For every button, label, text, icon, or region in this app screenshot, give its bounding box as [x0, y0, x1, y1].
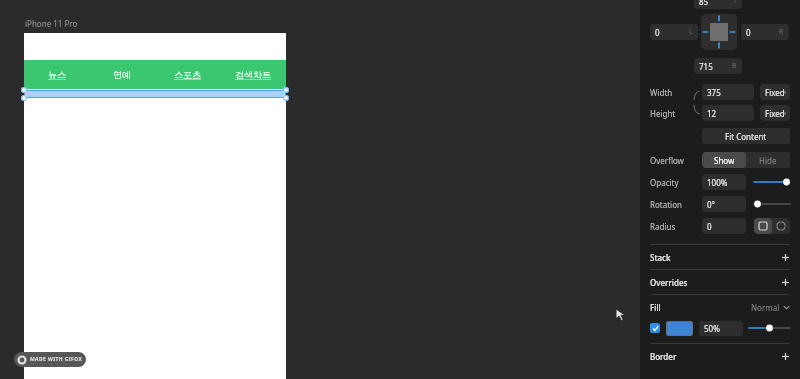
- button[interactable]: Border: [650, 344, 790, 368]
- staticText: 연예: [113, 69, 131, 80]
- staticText: L: [689, 27, 693, 37]
- staticText: Overflow: [650, 155, 702, 166]
- button[interactable]: 12: [702, 105, 754, 121]
- button[interactable]: Fill: [650, 295, 790, 319]
- button[interactable]: 85: [694, 0, 742, 9]
- staticText: MADE WITH GIFOX: [30, 356, 83, 363]
- staticText: Fit Content: [725, 131, 767, 142]
- staticText: Opacity: [650, 177, 702, 188]
- other: Add Overrides: [781, 278, 790, 287]
- button[interactable]: Fixed: [760, 105, 790, 121]
- button[interactable]: Padding: [701, 14, 737, 50]
- button[interactable]: 0°: [702, 196, 746, 212]
- staticText: Radius: [650, 221, 702, 232]
- button[interactable]: Show: [702, 152, 746, 168]
- staticText: R: [779, 27, 784, 37]
- staticText: Normal: [751, 302, 780, 313]
- button[interactable]: 연예: [89, 60, 154, 89]
- staticText: T: [733, 0, 737, 6]
- staticText: 0°: [707, 199, 715, 210]
- button[interactable]: 뉴스: [24, 60, 89, 89]
- staticText: 12: [707, 108, 717, 119]
- button[interactable]: Made with Gifox: [17, 352, 83, 367]
- staticText: Width: [650, 87, 692, 98]
- staticText: 0: [707, 221, 712, 232]
- staticText: 100%: [707, 177, 728, 188]
- button[interactable]: 715: [694, 58, 742, 74]
- staticText: 85: [699, 0, 709, 7]
- button[interactable]: 50%: [699, 321, 743, 336]
- staticText: 50%: [704, 323, 720, 334]
- button[interactable]: Fixed: [760, 84, 790, 100]
- staticText: 스포츠: [174, 69, 201, 80]
- other: Add Stack: [781, 253, 790, 262]
- staticText: 0: [746, 27, 751, 38]
- staticText: 0: [655, 27, 660, 38]
- staticText: Stack: [650, 252, 671, 263]
- other: Add Border: [781, 352, 790, 361]
- button[interactable]: Hide: [746, 152, 790, 168]
- staticText: Fill: [650, 302, 661, 313]
- button[interactable]: Overrides: [650, 270, 790, 294]
- staticText: 715: [699, 61, 713, 72]
- staticText: Hide: [759, 155, 777, 166]
- button[interactable]: Uniform radius: [754, 218, 772, 234]
- staticText: 뉴스: [48, 69, 66, 80]
- button[interactable]: 0: [741, 24, 789, 40]
- staticText: Fixed: [765, 87, 785, 98]
- button[interactable]: Stack: [650, 245, 790, 269]
- button[interactable]: Fit Content: [702, 128, 790, 144]
- staticText: Fixed: [765, 108, 785, 119]
- staticText: B: [732, 61, 737, 71]
- button[interactable]: 100%: [702, 174, 746, 190]
- button[interactable]: 스포츠: [154, 60, 220, 89]
- button[interactable]: 0: [702, 218, 746, 234]
- button[interactable]: 375: [702, 84, 754, 100]
- button[interactable]: Rotation slider: [754, 198, 790, 210]
- button[interactable]: Individual radius: [772, 218, 790, 234]
- button[interactable]: 0: [650, 24, 698, 40]
- button[interactable]: 검색차트: [220, 60, 286, 89]
- staticText: Border: [650, 351, 677, 362]
- button[interactable]: Opacity slider: [754, 176, 790, 188]
- staticText: Height: [650, 108, 692, 119]
- staticText: 검색차트: [235, 69, 271, 80]
- button[interactable]: Fill enabled: [650, 323, 660, 333]
- staticText: iPhone 11 Pro: [25, 18, 78, 29]
- staticText: Overrides: [650, 277, 688, 288]
- staticText: Show: [714, 155, 735, 166]
- button[interactable]: Fill colour: [666, 321, 693, 336]
- staticText: 375: [707, 87, 721, 98]
- staticText: Rotation: [650, 199, 702, 210]
